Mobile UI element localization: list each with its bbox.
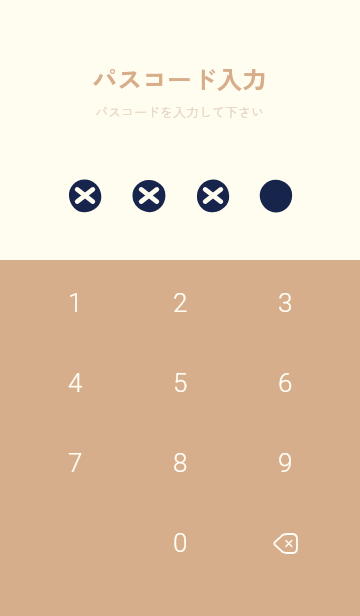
staticText: 5 — [173, 368, 188, 398]
button[interactable]: 1 — [30, 268, 120, 338]
staticText: 7 — [68, 448, 83, 478]
staticText: パスコード入力 — [92, 60, 268, 96]
staticText: 4 — [68, 368, 83, 398]
staticText: 9 — [278, 448, 293, 478]
staticText: 2 — [173, 288, 188, 318]
button[interactable]: Backspace — [240, 508, 330, 578]
staticText: 8 — [173, 448, 188, 478]
button[interactable]: 6 — [240, 348, 330, 418]
staticText: パスコードを入力して下さい — [95, 102, 265, 121]
button[interactable]: 2 — [135, 268, 225, 338]
staticText: 6 — [278, 368, 293, 398]
button[interactable]: 9 — [240, 428, 330, 498]
staticText: 0 — [173, 528, 188, 558]
button[interactable]: 8 — [135, 428, 225, 498]
button[interactable]: 0 — [135, 508, 225, 578]
staticText: 1 — [68, 288, 83, 318]
staticText: 3 — [278, 288, 293, 318]
button[interactable]: 4 — [30, 348, 120, 418]
button[interactable]: 5 — [135, 348, 225, 418]
button[interactable]: 3 — [240, 268, 330, 338]
button[interactable]: 7 — [30, 428, 120, 498]
